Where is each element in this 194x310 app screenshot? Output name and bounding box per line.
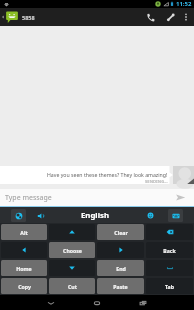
button[interactable]: Clear xyxy=(97,224,144,240)
staticText: Cut xyxy=(68,283,77,290)
button[interactable]: Send xyxy=(166,189,194,206)
button[interactable]: Call xyxy=(140,8,160,26)
staticText: Choose xyxy=(63,247,82,254)
button[interactable]: Back xyxy=(33,295,69,310)
button[interactable]: Choose xyxy=(49,242,95,258)
staticText: End xyxy=(116,265,126,272)
staticText: 5858 xyxy=(22,14,35,21)
button[interactable]: Move down xyxy=(49,260,95,276)
button[interactable]: Emoji xyxy=(144,209,157,222)
button[interactable]: Back xyxy=(146,242,193,258)
staticText: Alt xyxy=(20,229,28,236)
staticText: Home xyxy=(16,265,32,272)
button[interactable]: Move right xyxy=(97,242,144,258)
button[interactable]: Attach xyxy=(160,8,180,26)
button[interactable]: Alt xyxy=(1,224,47,240)
button[interactable]: Paste xyxy=(97,278,144,294)
button[interactable]: Backspace xyxy=(146,224,193,240)
staticText: Have you seen these themes? They look am… xyxy=(47,171,168,178)
button[interactable]: Move up xyxy=(49,224,95,240)
button[interactable]: Navigate up xyxy=(0,8,5,26)
staticText: Paste xyxy=(113,283,128,290)
button[interactable]: Sound xyxy=(34,209,47,222)
button[interactable]: Recent apps xyxy=(125,295,161,310)
staticText: Tab xyxy=(165,283,174,290)
button[interactable]: Keyboard layout xyxy=(168,209,183,222)
staticText: Type message xyxy=(5,193,166,203)
button[interactable]: Home xyxy=(1,260,47,276)
button[interactable]: More options xyxy=(180,8,192,26)
button[interactable]: Move left xyxy=(1,242,47,258)
button[interactable]: Copy xyxy=(1,278,47,294)
button[interactable]: Cut xyxy=(49,278,95,294)
staticText: 11:52 xyxy=(176,0,192,8)
staticText: Clear xyxy=(114,229,128,236)
button[interactable]: End xyxy=(97,260,144,276)
staticText: English xyxy=(81,210,109,221)
staticText: SENDING... xyxy=(145,179,168,184)
button[interactable]: Tab xyxy=(146,278,193,294)
staticText: Copy xyxy=(18,283,31,290)
button[interactable]: Home xyxy=(79,295,115,310)
button[interactable]: Change language xyxy=(11,209,26,222)
button[interactable]: Space xyxy=(146,260,193,276)
staticText: Back xyxy=(163,247,176,254)
